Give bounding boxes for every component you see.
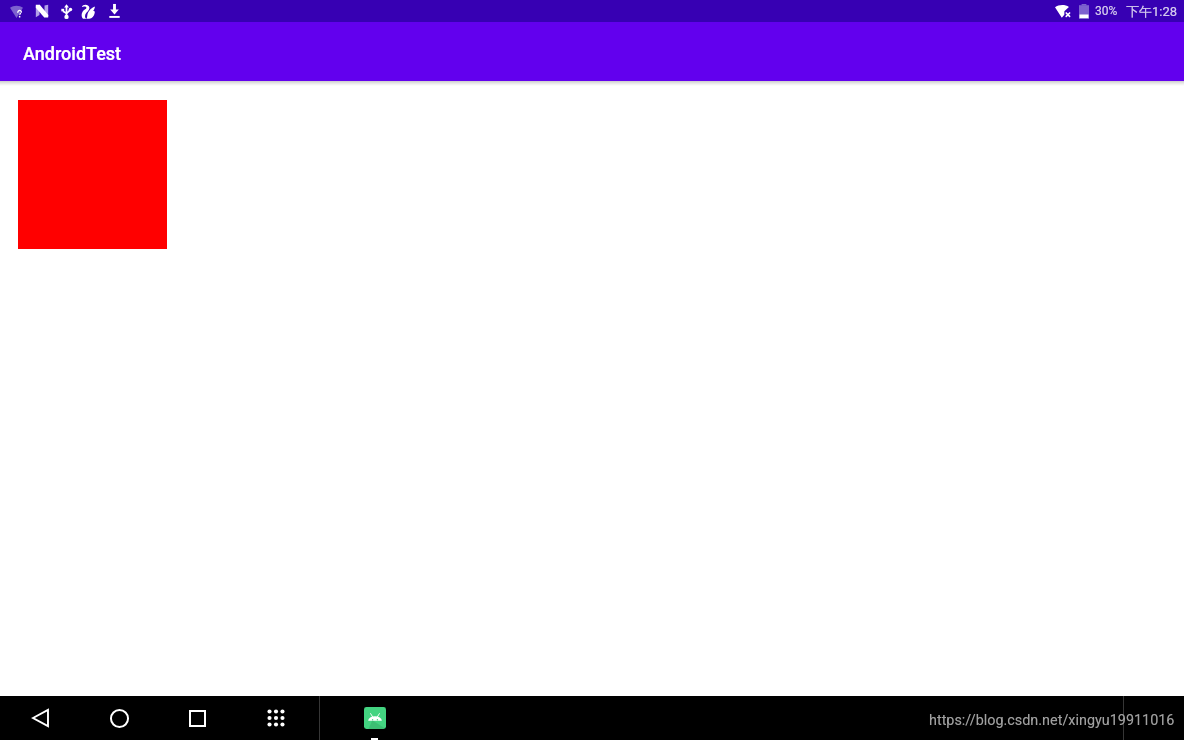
button[interactable]: All apps [256, 696, 296, 740]
button[interactable]: Home [99, 696, 139, 740]
staticText: https://blog.csdn.net/xingyu19911016 [929, 712, 1175, 729]
button[interactable]: Back [20, 696, 60, 740]
staticText: 30% [1095, 4, 1118, 18]
button[interactable]: Recent apps [177, 696, 217, 740]
staticText: 下午1:28 [1126, 3, 1178, 19]
button[interactable]: Android app [364, 707, 386, 729]
staticText: AndroidTest [23, 43, 122, 64]
